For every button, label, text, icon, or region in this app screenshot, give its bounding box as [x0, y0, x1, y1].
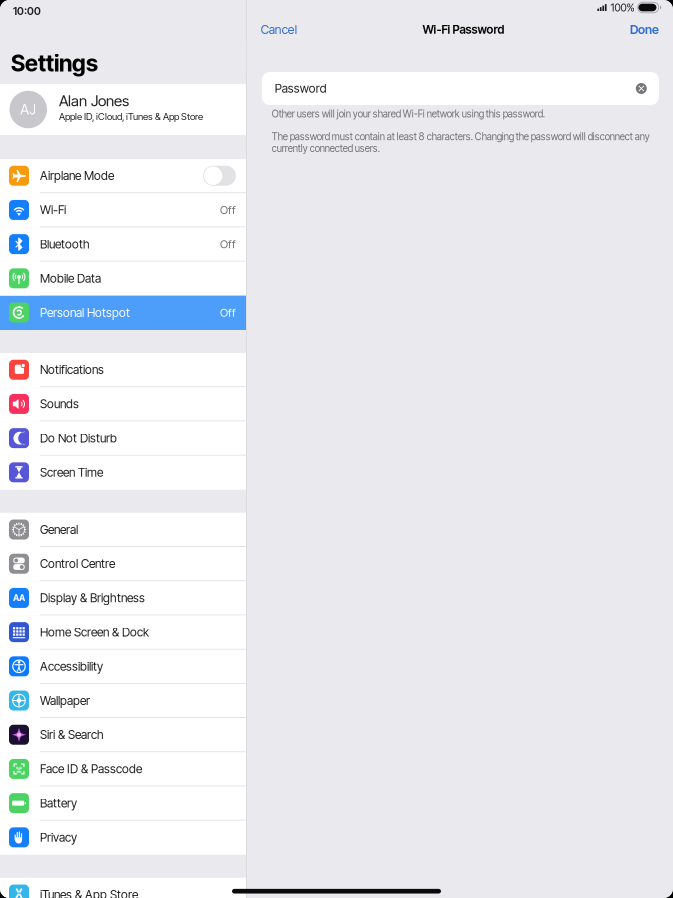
staticText: Accessibility	[40, 659, 103, 674]
button[interactable]: Cancel	[247, 18, 297, 41]
staticText: Apple ID, iCloud, iTunes & App Store	[59, 111, 203, 122]
button[interactable]: Personal Hotspot	[0, 296, 246, 330]
button[interactable]: AA	[0, 581, 246, 615]
staticText: Off	[220, 203, 236, 217]
staticText: Control Centre	[40, 556, 115, 571]
staticText: Other users will join your shared Wi-Fi …	[272, 108, 545, 120]
staticText: Mobile Data	[40, 271, 101, 286]
button[interactable]: Bluetooth	[0, 227, 246, 262]
staticText: Off	[220, 237, 236, 251]
button[interactable]: Face ID & Passcode	[0, 752, 246, 786]
button[interactable]: Wi-Fi	[0, 193, 246, 227]
staticText: Notifications	[40, 362, 104, 377]
staticText: Sounds	[40, 397, 79, 411]
button[interactable]: Notifications	[0, 353, 246, 387]
staticText: 100%	[610, 1, 634, 14]
staticText: Alan Jones	[59, 92, 129, 110]
staticText: Do Not Disturb	[40, 431, 117, 445]
button[interactable]: Siri & Search	[0, 718, 246, 752]
staticText: Battery	[40, 796, 77, 810]
button[interactable]: Airplane Mode	[0, 159, 246, 193]
staticText: 10:00	[13, 4, 41, 17]
staticText: Airplane Mode	[40, 168, 114, 183]
staticText: AJ	[20, 101, 36, 118]
staticText: Privacy	[40, 830, 77, 845]
button[interactable]: Do Not Disturb	[0, 421, 246, 456]
staticText: Home Screen & Dock	[40, 625, 149, 639]
staticText: General	[40, 522, 78, 537]
staticText: Done	[630, 22, 659, 37]
button[interactable]: Accessibility	[0, 650, 246, 684]
staticText: Off	[220, 306, 236, 319]
staticText: AA	[13, 593, 25, 603]
staticText: Cancel	[261, 22, 297, 37]
staticText: Face ID & Passcode	[40, 762, 142, 776]
button[interactable]: iTunes & App Store	[0, 878, 246, 898]
staticText: Wallpaper	[40, 693, 90, 708]
button[interactable]: Done	[630, 18, 673, 41]
button[interactable]: Clear password	[636, 83, 659, 94]
staticText: iTunes & App Store	[40, 887, 138, 898]
button[interactable]: General	[0, 513, 246, 547]
button[interactable]: Mobile Data	[0, 262, 246, 296]
staticText: Display & Brightness	[40, 591, 145, 605]
button[interactable]: Control Centre	[0, 547, 246, 581]
button[interactable]: AJ	[0, 84, 246, 135]
staticText: Settings	[11, 50, 98, 77]
staticText: Bluetooth	[40, 237, 90, 251]
button[interactable]: Privacy	[0, 821, 246, 855]
staticText: The password must contain at least 8 cha…	[272, 131, 650, 154]
button[interactable]: Wallpaper	[0, 684, 246, 718]
button[interactable]: Screen Time	[0, 456, 246, 490]
button[interactable]: Sounds	[0, 387, 246, 421]
button[interactable]: Battery	[0, 786, 246, 821]
staticText: Personal Hotspot	[40, 305, 130, 320]
button[interactable]: Home Screen & Dock	[0, 615, 246, 650]
staticText: Wi-Fi	[40, 203, 66, 217]
staticText: Siri & Search	[40, 727, 104, 742]
staticText: Password	[275, 81, 327, 96]
staticText: Wi-Fi Password	[422, 22, 504, 37]
staticText: Screen Time	[40, 465, 103, 480]
